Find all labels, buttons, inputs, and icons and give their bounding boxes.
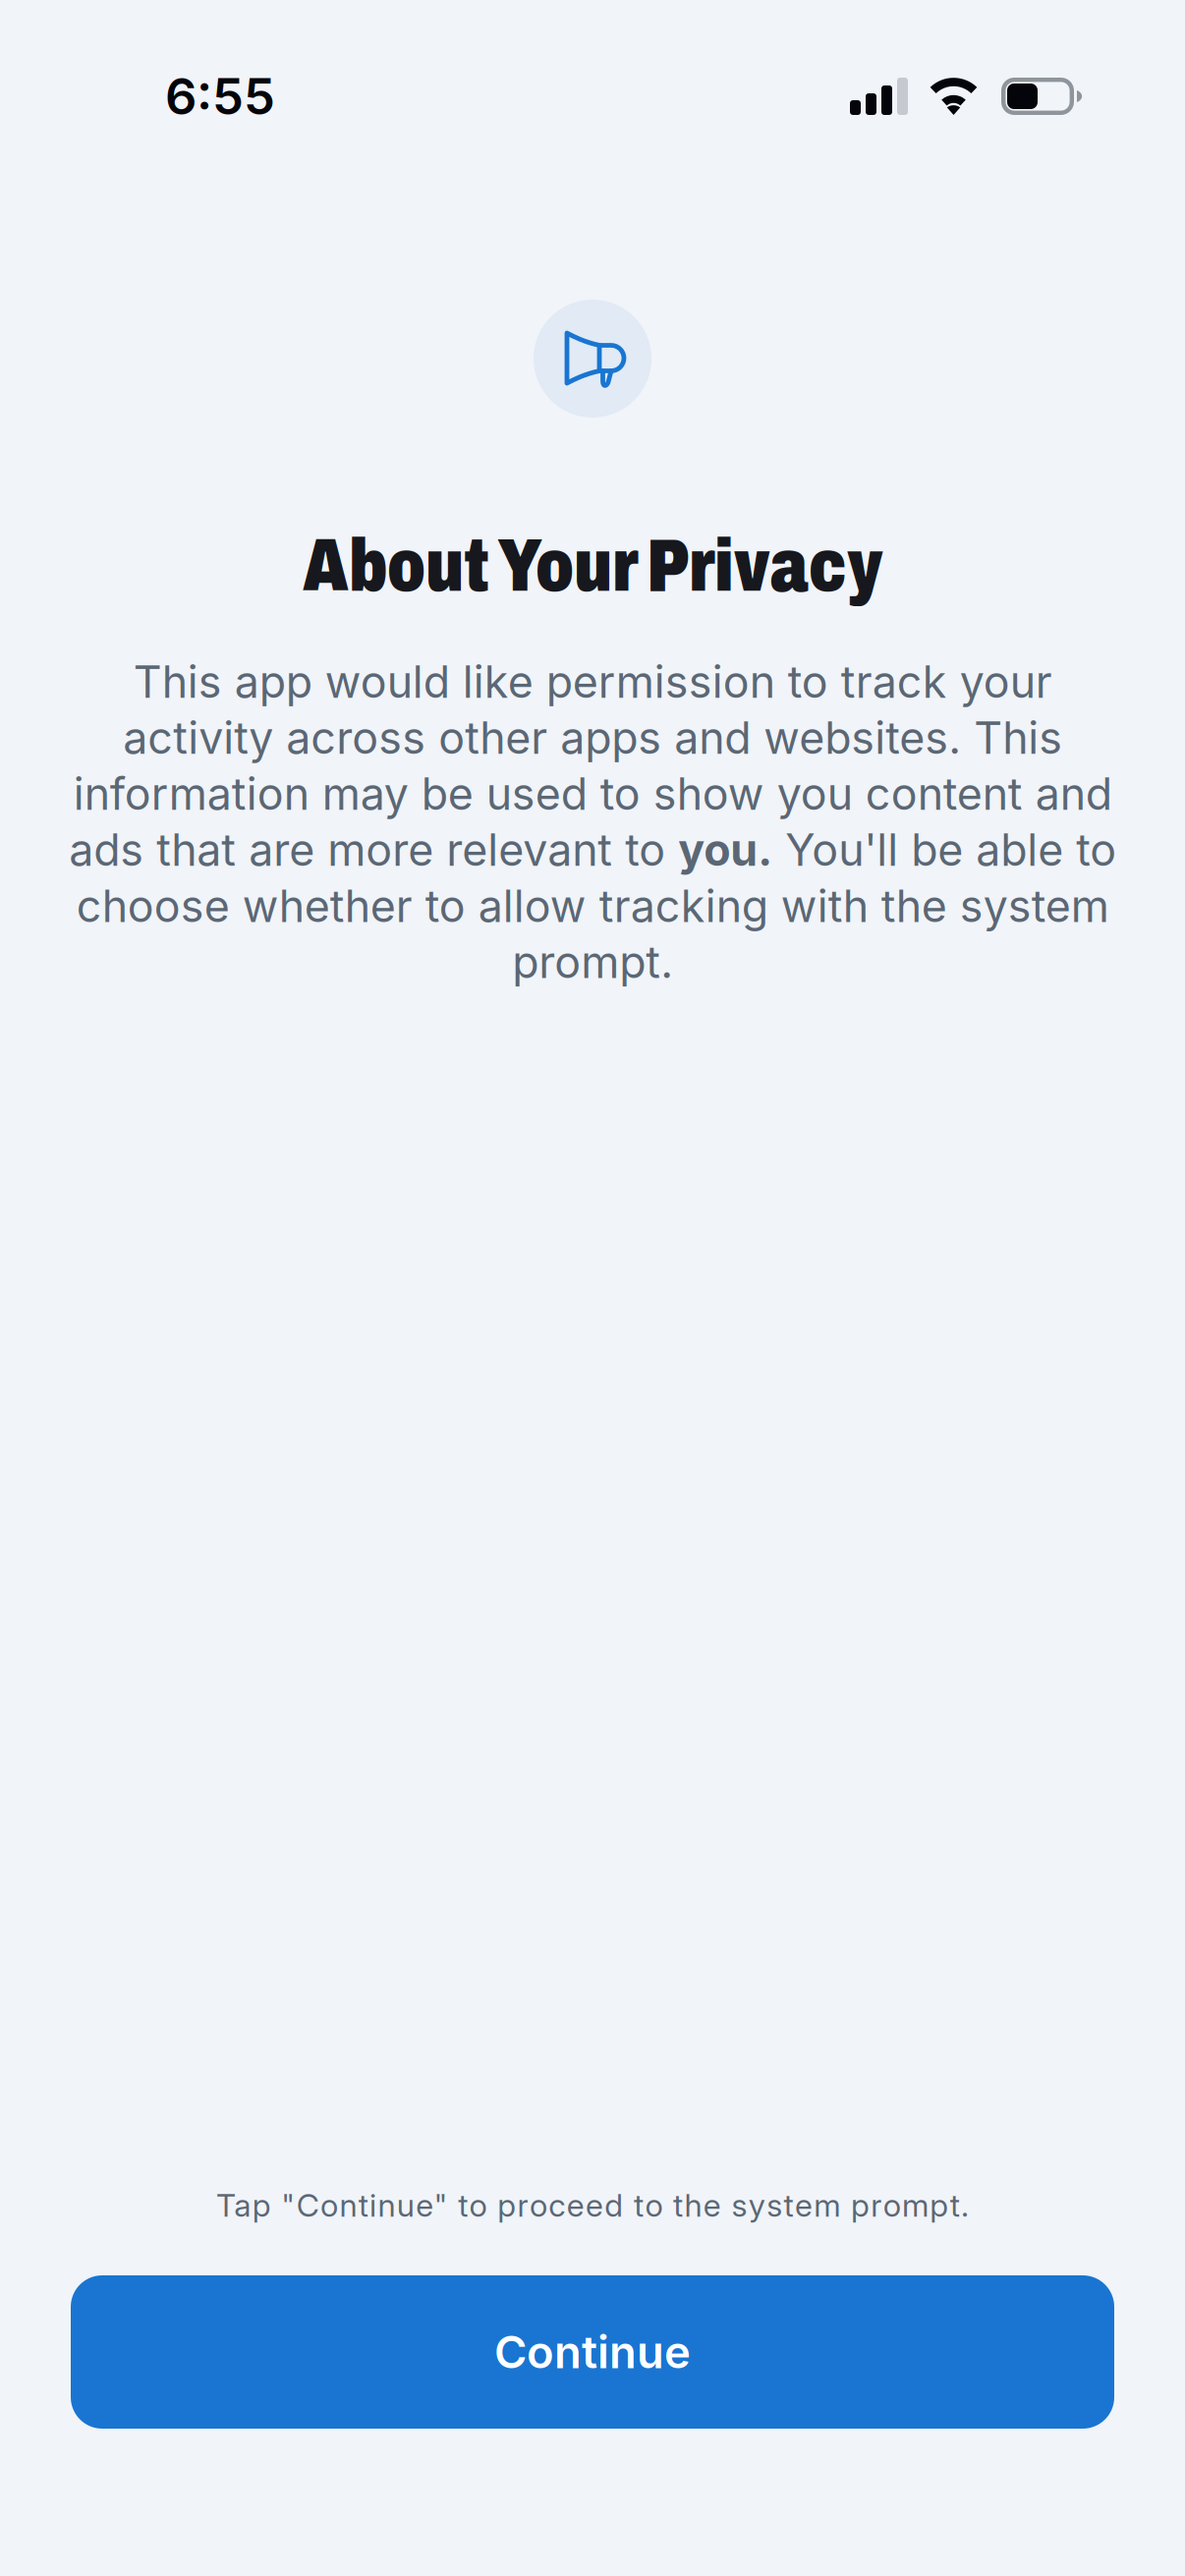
staticText: Tap "Continue" to proceed to the system … [216,2186,969,2224]
staticText: About Your Privacy [303,526,882,606]
staticText: This app would like permission to track … [69,655,1116,989]
staticText: Continue [494,2325,691,2379]
staticText: 6:55 [165,66,275,126]
button[interactable]: Continue [71,2275,1114,2429]
